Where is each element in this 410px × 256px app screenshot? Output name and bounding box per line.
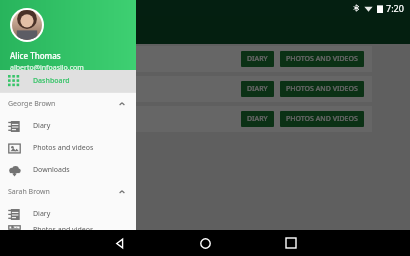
button[interactable]: DIARY: [241, 81, 274, 97]
staticText: PHOTOS AND VIDEOS: [286, 54, 358, 64]
staticText: Diary: [33, 121, 51, 131]
staticText: PHOTOS AND VIDEOS: [286, 114, 358, 124]
staticText: Alice Thomas: [10, 50, 61, 61]
staticText: Photos and videos: [33, 225, 94, 230]
button[interactable]: DIARY: [241, 51, 274, 67]
button[interactable]: Sarah Brown: [0, 181, 136, 203]
button[interactable]: Diary: [0, 203, 136, 225]
button[interactable]: PHOTOS AND VIDEOS: [280, 81, 364, 97]
staticText: alberto@infoasilo.com: [10, 63, 84, 70]
staticText: DIARY: [247, 114, 268, 124]
staticText: Photos and videos: [33, 143, 94, 153]
staticText: Diary: [33, 209, 51, 219]
button[interactable]: Downloads: [0, 159, 136, 181]
staticText: DIARY: [247, 54, 268, 64]
staticText: 7:20: [386, 2, 404, 14]
button[interactable]: Profile photo: [12, 10, 42, 40]
button[interactable]: Photos and videos: [0, 225, 136, 230]
other: Collapse: [118, 100, 126, 108]
staticText: Downloads: [33, 165, 70, 175]
button[interactable]: Dashboard: [0, 70, 136, 92]
button[interactable]: George Brown: [0, 93, 136, 115]
button[interactable]: Photos and videos: [0, 137, 136, 159]
staticText: DIARY: [247, 84, 268, 94]
button[interactable]: DIARY: [241, 111, 274, 127]
other: Collapse: [118, 188, 126, 196]
button[interactable]: PHOTOS AND VIDEOS: [280, 51, 364, 67]
staticText: Sarah Brown: [8, 187, 50, 197]
button[interactable]: Recent apps: [269, 230, 313, 256]
staticText: PHOTOS AND VIDEOS: [286, 84, 358, 94]
button[interactable]: Back: [97, 230, 141, 256]
button[interactable]: PHOTOS AND VIDEOS: [280, 111, 364, 127]
button[interactable]: Diary: [0, 115, 136, 137]
staticText: George Brown: [8, 99, 56, 109]
button[interactable]: Home: [183, 230, 227, 256]
staticText: Dashboard: [33, 76, 70, 86]
